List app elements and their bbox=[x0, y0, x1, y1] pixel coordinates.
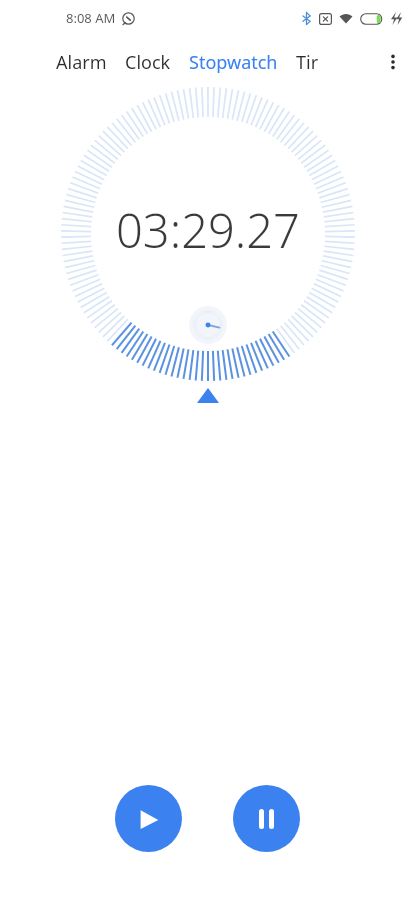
button[interactable]: Alarm bbox=[56, 44, 107, 81]
staticText: Clock bbox=[125, 50, 171, 75]
staticText: Stopwatch bbox=[189, 50, 278, 75]
button[interactable]: More options bbox=[371, 40, 415, 84]
button[interactable]: Clock bbox=[125, 44, 171, 81]
staticText: Tir bbox=[296, 50, 319, 75]
staticText: Alarm bbox=[56, 50, 107, 75]
staticText: 03:29.27 bbox=[116, 198, 300, 262]
button[interactable]: Tir bbox=[296, 44, 319, 81]
staticText: 8:08 AM bbox=[66, 9, 116, 27]
button[interactable]: Stopwatch bbox=[189, 44, 278, 81]
button[interactable]: Pause bbox=[233, 785, 300, 852]
button[interactable]: Start bbox=[115, 785, 182, 852]
